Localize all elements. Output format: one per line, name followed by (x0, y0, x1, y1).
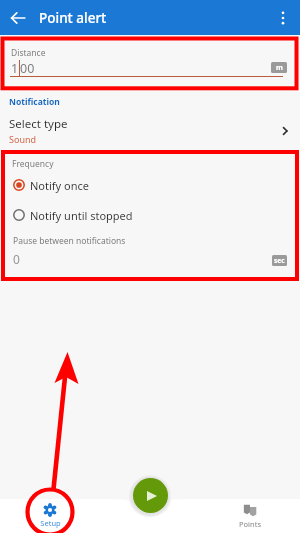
button[interactable]: Points (200, 499, 300, 533)
staticText: Notification (9, 96, 60, 108)
staticText: Distance (11, 47, 46, 59)
staticText: sec (274, 256, 285, 265)
button[interactable]: Select type (0, 114, 300, 146)
staticText: Select type (9, 116, 68, 132)
button[interactable]: More options (272, 7, 294, 29)
button[interactable]: Notify until stopped (0, 202, 300, 228)
staticText: Notify once (30, 178, 90, 193)
staticText: Frequency (12, 158, 54, 170)
button[interactable]: Setup (0, 499, 100, 533)
staticText: Points (239, 519, 261, 529)
staticText: 0 (13, 251, 20, 267)
button[interactable]: Back (8, 8, 28, 28)
staticText: Notify until stopped (30, 208, 133, 223)
button[interactable]: Unit seconds (272, 255, 287, 266)
button[interactable]: Notify once (0, 172, 300, 198)
button[interactable]: Unit meters (271, 62, 287, 73)
staticText: Setup (40, 518, 61, 528)
button[interactable]: Start (133, 478, 168, 513)
staticText: m (276, 63, 283, 73)
staticText: Point alert (39, 9, 107, 27)
staticText: 00 (20, 60, 35, 77)
staticText: 1 (11, 60, 19, 77)
staticText: Sound (9, 133, 37, 145)
staticText: Pause between notifications (13, 235, 126, 247)
